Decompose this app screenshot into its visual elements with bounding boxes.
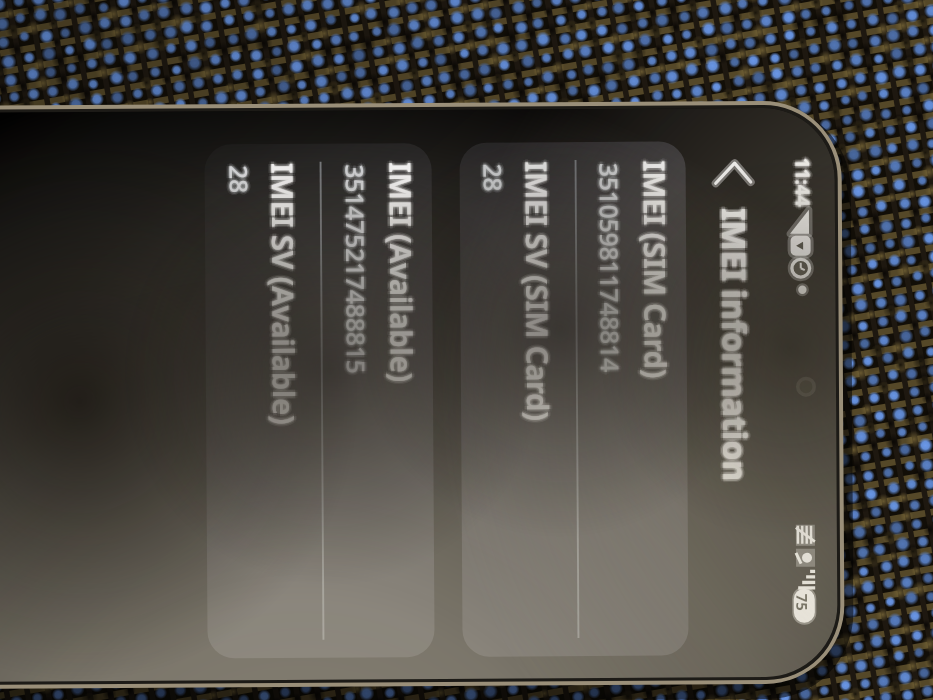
- button[interactable]: [580, 143, 688, 657]
- button[interactable]: [461, 143, 579, 657]
- button[interactable]: [325, 143, 433, 657]
- button[interactable]: [206, 143, 324, 657]
- button[interactable]: Navigate up: [714, 150, 768, 212]
